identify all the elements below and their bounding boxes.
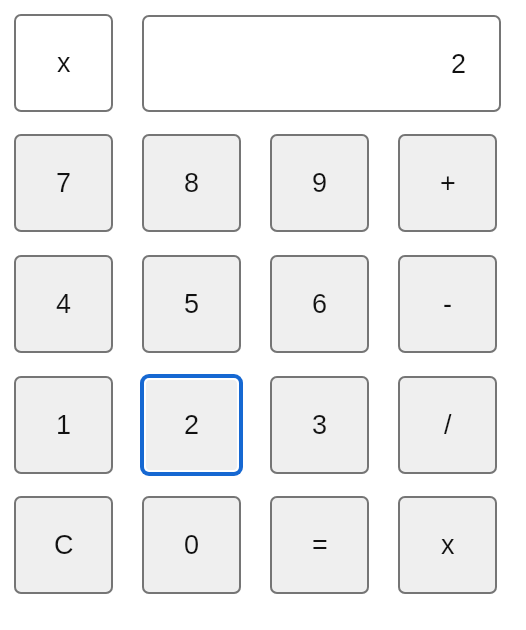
staticText: x — [441, 530, 455, 560]
staticText: 4 — [56, 289, 72, 319]
button[interactable]: 7 — [14, 134, 113, 232]
button[interactable]: C — [14, 496, 113, 594]
button[interactable]: = — [270, 496, 369, 594]
staticText: x — [57, 48, 71, 78]
staticText: C — [54, 530, 74, 560]
staticText: + — [440, 168, 456, 198]
button[interactable]: - — [398, 255, 497, 353]
staticText: 0 — [184, 530, 200, 560]
staticText: / — [444, 410, 452, 440]
button[interactable]: 1 — [14, 376, 113, 474]
staticText: 2 — [451, 49, 467, 79]
staticText: 8 — [184, 168, 200, 198]
button[interactable]: 5 — [142, 255, 241, 353]
button[interactable]: 6 — [270, 255, 369, 353]
button[interactable]: x — [14, 14, 113, 112]
button[interactable]: 0 — [142, 496, 241, 594]
button[interactable]: 4 — [14, 255, 113, 353]
staticText: 6 — [312, 289, 328, 319]
button[interactable]: 3 — [270, 376, 369, 474]
staticText: 3 — [312, 410, 328, 440]
button[interactable]: + — [398, 134, 497, 232]
staticText: 5 — [184, 289, 200, 319]
staticText: = — [312, 530, 328, 560]
button[interactable]: 2 — [142, 15, 501, 112]
staticText: 2 — [184, 410, 200, 440]
button[interactable]: 8 — [142, 134, 241, 232]
staticText: 7 — [56, 168, 72, 198]
button[interactable]: / — [398, 376, 497, 474]
button[interactable]: 2 — [146, 380, 237, 470]
button[interactable]: 9 — [270, 134, 369, 232]
staticText: 9 — [312, 168, 328, 198]
staticText: 1 — [56, 410, 72, 440]
staticText: - — [443, 289, 452, 319]
button[interactable]: x — [398, 496, 497, 594]
